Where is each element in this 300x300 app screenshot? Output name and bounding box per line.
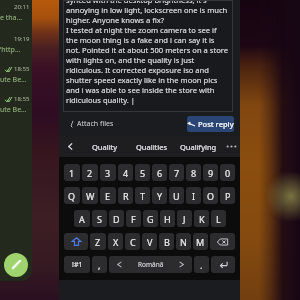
button[interactable]: X — [108, 233, 123, 250]
button[interactable]: . — [194, 256, 209, 273]
button[interactable]: 9 — [203, 164, 218, 181]
button[interactable]: S — [92, 210, 107, 227]
button[interactable]: I — [186, 187, 201, 204]
button[interactable]: Space — [109, 256, 192, 273]
button[interactable]: D — [109, 210, 124, 227]
staticText: Quality — [92, 142, 118, 152]
staticText: B — [164, 236, 170, 248]
button[interactable]: K — [194, 210, 209, 227]
button[interactable]: P — [220, 187, 235, 204]
staticText: 0 — [225, 167, 231, 179]
staticText: 20:11 — [14, 3, 30, 11]
button[interactable]: C — [125, 233, 140, 250]
staticText: ‘http… — [0, 45, 21, 55]
button[interactable]: Qualifying — [175, 136, 222, 157]
button[interactable]: New chat — [4, 253, 28, 277]
button[interactable]: 3 — [100, 164, 116, 181]
staticText: 3 — [105, 167, 111, 179]
staticText: synced with the desktop brightness, it's… — [66, 0, 229, 105]
staticText: 18:55 — [14, 95, 30, 103]
staticText: 18:55 — [14, 65, 30, 73]
staticText: Post reply — [198, 119, 234, 129]
button[interactable]: R — [118, 187, 133, 204]
staticText: C — [130, 236, 136, 248]
staticText: D — [113, 213, 120, 225]
button[interactable]: synced with the desktop brightness, it's… — [63, 0, 233, 112]
button[interactable]: U — [169, 187, 184, 204]
staticText: W — [86, 190, 95, 202]
button[interactable]: Backspace — [210, 233, 235, 250]
staticText: Z — [95, 236, 101, 248]
button[interactable]: 8 — [186, 164, 201, 181]
staticText: 2 — [87, 167, 93, 179]
button[interactable]: Z — [90, 233, 106, 250]
button[interactable]: 5 — [135, 164, 150, 181]
button[interactable]: Attach files — [68, 116, 116, 132]
staticText: Y — [157, 190, 163, 202]
staticText: V — [147, 236, 153, 248]
button[interactable]: Quality — [81, 136, 128, 157]
button[interactable]: B — [159, 233, 174, 250]
staticText: H — [164, 213, 171, 225]
button[interactable]: 7 — [169, 164, 184, 181]
button[interactable]: 4 — [118, 164, 133, 181]
button[interactable]: Post reply — [187, 116, 234, 132]
button[interactable]: W — [82, 187, 98, 204]
button[interactable]: H — [160, 210, 175, 227]
button[interactable]: Enter — [211, 256, 235, 273]
button[interactable]: M — [193, 233, 208, 250]
staticText: L — [216, 213, 221, 225]
button[interactable]: , — [92, 256, 107, 273]
staticText: J — [183, 213, 186, 225]
button[interactable]: V — [142, 233, 157, 250]
button[interactable]: O — [203, 187, 218, 204]
button[interactable]: L — [211, 210, 226, 227]
button[interactable]: J — [177, 210, 192, 227]
staticText: 5 — [140, 167, 146, 179]
button[interactable]: T — [135, 187, 150, 204]
button[interactable]: F — [126, 210, 141, 227]
staticText: . — [200, 259, 203, 271]
button[interactable]: A — [74, 210, 90, 227]
button[interactable]: 0 — [220, 164, 235, 181]
button[interactable]: More options — [222, 136, 240, 157]
button[interactable]: Qualities — [128, 136, 175, 157]
staticText: ute Be… — [0, 105, 27, 115]
button[interactable]: 18:55 — [0, 90, 32, 120]
staticText: , — [98, 259, 101, 271]
staticText: 19:19 — [14, 35, 30, 43]
staticText: K — [199, 213, 205, 225]
button[interactable]: Shift — [64, 233, 88, 250]
button[interactable]: 6 — [152, 164, 167, 181]
button[interactable]: 2 — [82, 164, 98, 181]
staticText: I — [192, 190, 196, 202]
button[interactable]: Back — [59, 136, 81, 157]
button[interactable]: E — [100, 187, 116, 204]
staticText: 8 — [191, 167, 197, 179]
button[interactable]: N — [176, 233, 191, 250]
button[interactable]: 1 — [64, 164, 80, 181]
staticText: G — [147, 213, 154, 225]
button[interactable]: Y — [152, 187, 167, 204]
staticText: T — [140, 190, 146, 202]
staticText: Română — [138, 260, 164, 269]
staticText: Q — [68, 190, 76, 202]
staticText: X — [113, 236, 119, 248]
staticText: !#1 — [72, 260, 83, 270]
button[interactable]: Q — [64, 187, 80, 204]
staticText: Qualifying — [180, 142, 217, 152]
staticText: 7 — [174, 167, 180, 179]
staticText: 4 — [123, 167, 129, 179]
staticText: 6 — [157, 167, 163, 179]
button[interactable]: 18:55 — [0, 60, 32, 90]
staticText: R — [123, 190, 129, 202]
staticText: ute Be… — [0, 75, 27, 85]
button[interactable]: 20:11 — [0, 0, 32, 30]
staticText: 9 — [208, 167, 214, 179]
staticText: 1 — [69, 167, 75, 179]
button[interactable]: 19:19 — [0, 30, 32, 60]
button[interactable]: G — [143, 210, 158, 227]
staticText: A — [79, 213, 85, 225]
button[interactable]: !#1 — [64, 256, 90, 273]
staticText: U — [173, 190, 180, 202]
